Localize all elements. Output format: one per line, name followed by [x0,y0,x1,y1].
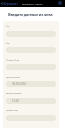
button[interactable]: 30.09.2024 [6,81,56,87]
staticText: Сбермаркет [2,2,18,6]
staticText: Введите данные из чека [8,12,53,17]
staticText: Дата покупки [6,76,20,79]
staticText: ФН или ФПД [6,59,19,62]
staticText: 12:30 [12,99,19,103]
staticText: ФД [6,42,10,45]
staticText: Время покупки [6,92,22,95]
button[interactable]: Profile [58,1,62,5]
staticText: 30.09.2024 [12,82,26,86]
staticText: ФП [6,25,10,28]
button[interactable]: 12:30 [6,98,56,104]
staticText: Сумма чека [6,109,18,112]
staticText: Магазин 1 ХХХХХ [22,2,43,5]
